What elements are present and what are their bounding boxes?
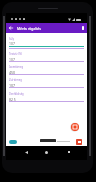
button[interactable]: Tag (9, 140, 17, 144)
staticText: Mérés rögzítés (17, 26, 41, 31)
button[interactable]: Súly (6, 33, 87, 49)
staticText: Zsírtömeg (9, 78, 22, 82)
button[interactable]: Home (42, 148, 50, 156)
button[interactable]: Save (78, 23, 87, 33)
button[interactable]: Back (6, 23, 16, 33)
button[interactable]: Testvíz (%) (6, 49, 87, 62)
button[interactable]: Zsírtömeg (6, 75, 87, 88)
button[interactable]: Back (22, 148, 30, 156)
staticText: Derékbőség (9, 92, 24, 96)
staticText: 107 (9, 57, 15, 62)
button[interactable]: Derékbőség (6, 89, 87, 102)
staticText: 450 (9, 70, 16, 75)
staticText: 82,5 (9, 97, 16, 102)
button[interactable]: Recents (65, 148, 73, 156)
staticText: 107 (9, 83, 16, 88)
staticText: 107 (9, 41, 15, 46)
staticText: Súly (9, 37, 15, 41)
button[interactable]: Stop recording (76, 139, 82, 145)
button[interactable]: Add measurement (71, 123, 79, 131)
button[interactable]: Izomtömeg (6, 62, 87, 75)
staticText: Testvíz (%) (9, 52, 22, 56)
staticText: Izomtömeg (9, 65, 24, 69)
